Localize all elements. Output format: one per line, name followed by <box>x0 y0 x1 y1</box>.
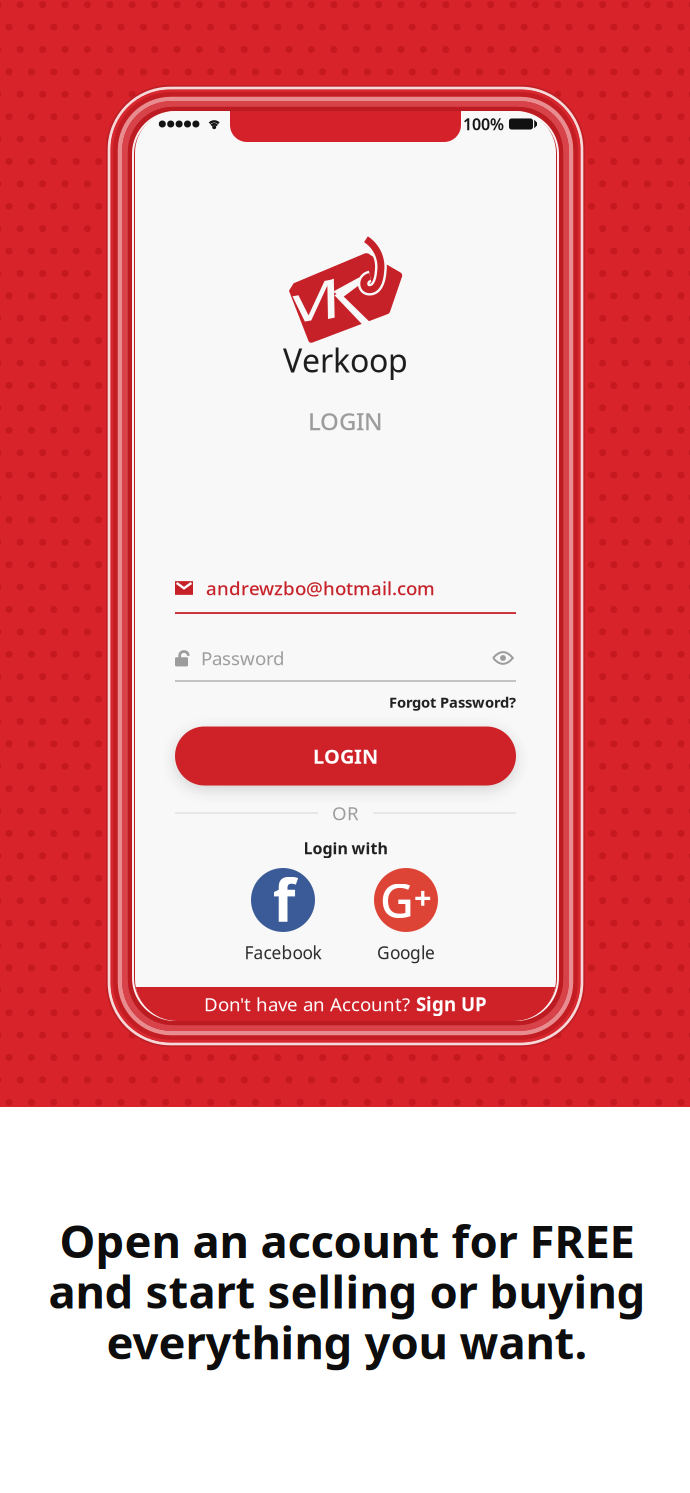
staticText: f <box>273 860 296 938</box>
staticText: Verkoop <box>283 339 408 381</box>
staticText: OR <box>332 801 359 825</box>
button[interactable]: G <box>344 868 467 964</box>
staticText: Open an account for FREE <box>59 1210 634 1270</box>
button[interactable]: Don't have an Account? <box>135 987 556 1021</box>
staticText: LOGIN <box>313 743 378 769</box>
staticText: 100% <box>463 113 504 135</box>
staticText: Facebook <box>244 941 321 964</box>
staticText: G <box>380 869 414 931</box>
staticText: LOGIN <box>308 405 383 437</box>
staticText: Password <box>201 646 284 670</box>
staticText: Google <box>377 941 435 964</box>
staticText: everything you want. <box>106 1312 587 1372</box>
staticText: + <box>414 876 432 917</box>
staticText: Don't have an Account? <box>204 992 410 1016</box>
staticText: Forgot Password? <box>389 692 516 712</box>
staticText: Login with <box>303 837 387 859</box>
staticText: Sign UP <box>416 992 487 1016</box>
staticText: and start selling or buying <box>48 1261 645 1321</box>
button[interactable]: LOGIN <box>175 726 516 785</box>
button[interactable]: Forgot Password? <box>175 691 516 713</box>
staticText: andrewzbo@hotmail.com <box>206 576 435 600</box>
button[interactable]: f <box>221 868 344 964</box>
button[interactable]: Show password <box>490 646 516 670</box>
